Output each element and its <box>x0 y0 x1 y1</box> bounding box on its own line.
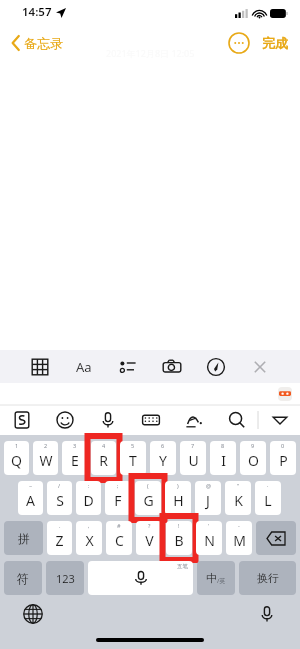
button[interactable]: " <box>225 481 251 515</box>
button[interactable]: ~ <box>18 481 43 515</box>
button[interactable]: Camera <box>162 357 182 377</box>
button[interactable]: - <box>226 521 252 555</box>
staticText: / <box>58 482 61 489</box>
staticText: - <box>238 522 240 529</box>
button[interactable]: Close <box>250 357 270 377</box>
button[interactable]: Markup <box>206 357 226 377</box>
button[interactable]: · <box>255 481 281 515</box>
staticText: W <box>39 451 53 470</box>
staticText: 6 <box>161 442 165 449</box>
staticText: ( <box>147 482 149 489</box>
staticText: J <box>206 491 210 510</box>
button[interactable]: , <box>76 521 102 555</box>
staticText: 5 <box>131 442 135 449</box>
button[interactable]: Keyboard layout <box>141 410 161 430</box>
button[interactable]: 9 <box>240 441 266 475</box>
button[interactable]: 拼 <box>4 521 43 555</box>
staticText: E <box>71 451 79 470</box>
staticText: 2 <box>44 442 48 449</box>
staticText: . <box>59 522 61 529</box>
staticText: ~ <box>29 482 33 489</box>
button[interactable]: 中 <box>197 561 235 595</box>
staticText: S <box>56 491 64 510</box>
staticText: V <box>145 531 154 550</box>
staticText: K <box>234 491 243 510</box>
staticText: B <box>174 531 184 550</box>
button[interactable]: 6 <box>150 441 176 475</box>
button[interactable]: Voice input <box>98 410 118 430</box>
button[interactable]: 备忘录 <box>8 31 67 55</box>
staticText: Aa <box>76 358 92 376</box>
staticText: U <box>188 451 199 470</box>
button[interactable]: Table <box>30 357 50 377</box>
staticText: Q <box>11 451 22 470</box>
staticText: ! <box>178 522 180 529</box>
button[interactable]: 5 <box>120 441 146 475</box>
staticText: N <box>204 531 215 550</box>
staticText: 123 <box>56 571 75 586</box>
staticText: 换行 <box>257 571 279 585</box>
button[interactable]: Handwriting <box>184 410 204 430</box>
button[interactable]: @ <box>195 481 221 515</box>
button[interactable]: # <box>106 521 132 555</box>
button[interactable]: More options <box>228 32 250 54</box>
button[interactable]: 完成 <box>260 31 290 55</box>
button[interactable]: Change language <box>22 603 44 625</box>
staticText: 符 <box>17 571 29 586</box>
staticText: ; <box>117 482 119 489</box>
button[interactable]: 7 <box>180 441 206 475</box>
staticText: A <box>26 491 35 510</box>
staticText: Z <box>55 531 64 550</box>
button[interactable]: 换行 <box>239 561 296 595</box>
staticText: T <box>129 451 137 470</box>
staticText: ? <box>148 522 151 529</box>
button[interactable]: ? <box>136 521 162 555</box>
staticText: /英 <box>217 577 226 585</box>
staticText: 7 <box>191 442 195 449</box>
button[interactable]: Space <box>88 561 193 595</box>
staticText: 拼 <box>18 531 30 546</box>
button[interactable]: Assistant <box>278 387 292 401</box>
button[interactable]: ( <box>135 481 161 515</box>
button[interactable]: 4 <box>91 441 116 475</box>
button[interactable]: 8 <box>210 441 236 475</box>
staticText: I <box>221 451 226 470</box>
staticText: 4 <box>102 442 106 449</box>
button[interactable]: ' <box>196 521 222 555</box>
button[interactable]: : <box>76 481 101 515</box>
staticText: # <box>117 522 121 529</box>
button[interactable]: Backspace <box>256 521 296 555</box>
button[interactable]: / <box>47 481 72 515</box>
staticText: P <box>279 451 288 470</box>
button[interactable]: Search <box>227 410 247 430</box>
staticText: C <box>115 531 124 550</box>
staticText: O <box>248 451 259 470</box>
button[interactable]: ! <box>166 521 192 555</box>
staticText: R <box>99 451 108 470</box>
button[interactable]: 0 <box>270 441 296 475</box>
button[interactable]: 1 <box>4 441 29 475</box>
staticText: 14:57 <box>22 4 52 20</box>
button[interactable]: Emoji <box>55 410 75 430</box>
button[interactable]: Sogou <box>12 410 32 430</box>
button[interactable]: 3 <box>62 441 87 475</box>
button[interactable]: ) <box>165 481 191 515</box>
staticText: X <box>85 531 94 550</box>
button[interactable]: Text format <box>74 357 94 377</box>
button[interactable]: . <box>47 521 72 555</box>
button[interactable]: ; <box>105 481 131 515</box>
button[interactable]: 2 <box>33 441 58 475</box>
staticText: M <box>233 531 246 550</box>
button[interactable]: Checklist <box>118 357 138 377</box>
staticText: ' <box>208 522 210 529</box>
staticText: " <box>237 482 240 489</box>
button[interactable]: Voice input <box>256 603 278 625</box>
staticText: ) <box>177 482 179 489</box>
staticText: 中 <box>206 571 217 585</box>
staticText: 完成 <box>262 35 288 51</box>
button[interactable]: Hide keyboard <box>270 410 290 430</box>
button[interactable]: 符 <box>4 561 42 595</box>
button[interactable]: 123 <box>46 561 84 595</box>
staticText: 8 <box>221 442 225 449</box>
